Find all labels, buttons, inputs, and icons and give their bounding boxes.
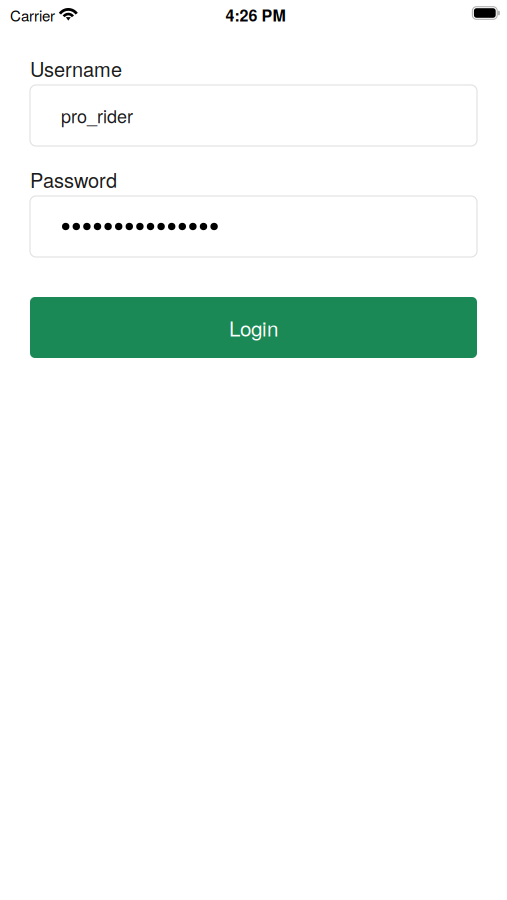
button[interactable]: Username text field, pro_rider	[30, 85, 477, 146]
staticText: 4:26 PM	[225, 3, 285, 26]
staticText: Username	[30, 54, 122, 83]
staticText: Carrier	[10, 4, 55, 26]
staticText: Password	[30, 165, 117, 194]
button[interactable]: Login	[30, 297, 477, 358]
staticText: pro_rider	[61, 103, 133, 128]
button[interactable]: Password secure text field	[30, 196, 477, 257]
staticText: Login	[229, 313, 278, 342]
